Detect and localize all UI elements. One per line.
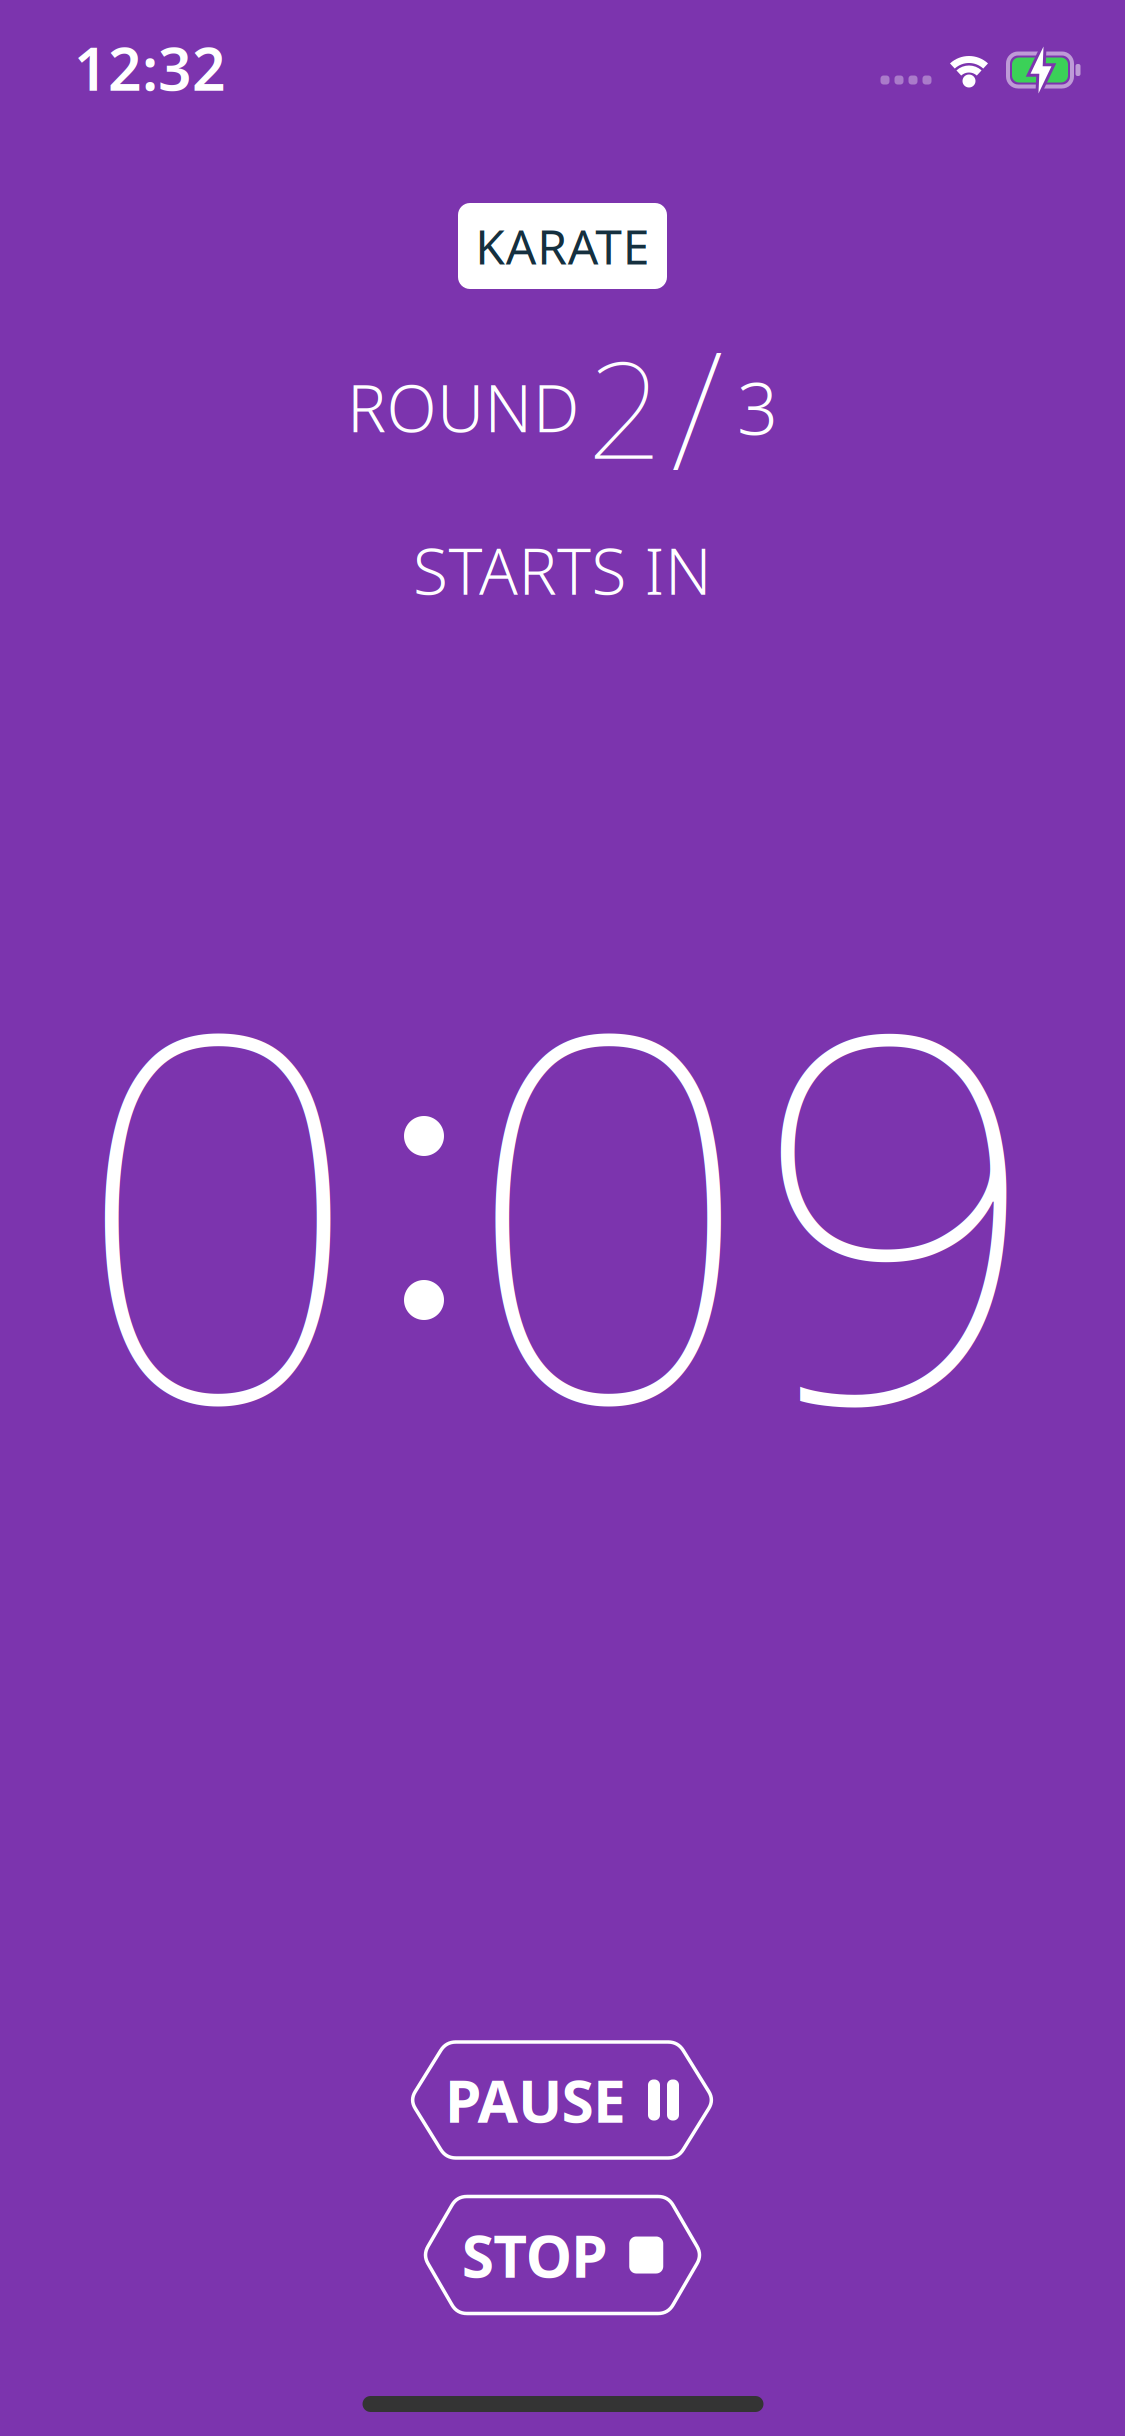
- staticText: STARTS IN: [413, 527, 712, 612]
- staticText: PAUSE: [445, 2061, 626, 2139]
- staticText: 09: [464, 869, 1042, 1541]
- button[interactable]: Pause: [410, 2042, 714, 2158]
- staticText: /: [671, 299, 723, 515]
- staticText: KARATE: [475, 214, 650, 278]
- staticText: 3: [737, 359, 778, 455]
- staticText: 2: [587, 318, 663, 496]
- staticText: STOP: [462, 2216, 607, 2294]
- staticText: ROUND: [347, 364, 579, 450]
- button[interactable]: Stop: [423, 2196, 702, 2313]
- staticText: 0: [73, 869, 362, 1541]
- staticText: 12:32: [74, 29, 226, 107]
